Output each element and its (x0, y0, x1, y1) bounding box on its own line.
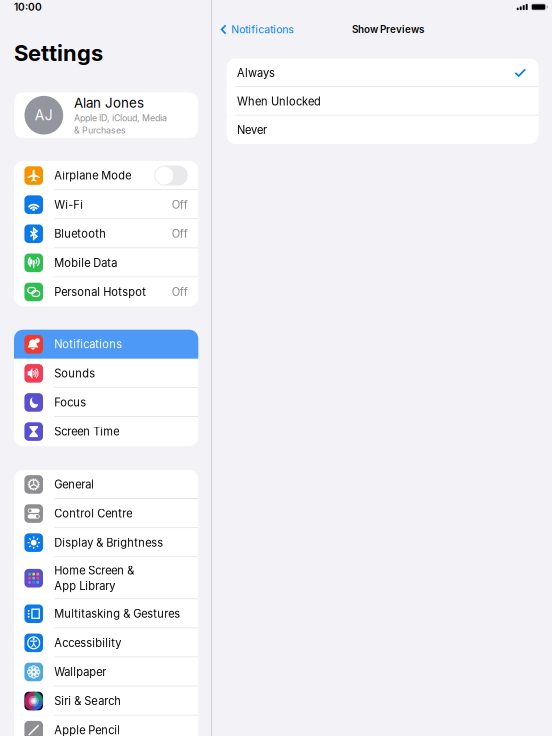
button[interactable]: Bluetooth (14, 219, 198, 248)
button[interactable]: Focus (14, 388, 198, 417)
button[interactable]: Accessibility (14, 628, 198, 657)
button[interactable]: Sounds (14, 359, 198, 388)
staticText: Off (172, 227, 188, 240)
button[interactable]: Notifications (212, 17, 301, 42)
staticText: Always (237, 66, 275, 80)
staticText: Personal Hotspot (54, 285, 146, 299)
staticText: Accessibility (54, 636, 121, 650)
staticText: Multitasking & Gestures (54, 607, 180, 620)
staticText: & Purchases (74, 125, 126, 135)
button[interactable]: Never (227, 116, 538, 144)
staticText: Notifications (54, 338, 122, 351)
staticText: Mobile Data (54, 256, 117, 270)
button[interactable]: AJ (14, 92, 198, 138)
button[interactable]: Mobile Data (14, 248, 198, 277)
staticText: Siri & Search (54, 694, 121, 708)
button[interactable]: Control Centre (14, 499, 198, 528)
staticText: Home Screen & (54, 564, 134, 577)
button[interactable]: Wi-Fi (14, 190, 198, 219)
staticText: Wi-Fi (54, 198, 83, 211)
button[interactable]: Apple Pencil (14, 716, 198, 736)
button[interactable]: Screen Time (14, 417, 198, 446)
staticText: Display & Brightness (54, 536, 163, 549)
staticText: Off (172, 285, 188, 299)
staticText: Off (172, 198, 188, 211)
button[interactable]: Personal Hotspot (14, 277, 198, 306)
button[interactable]: General (14, 470, 198, 499)
staticText: Bluetooth (54, 227, 106, 240)
staticText: Screen Time (54, 425, 119, 438)
staticText: Apple Pencil (54, 723, 120, 736)
button[interactable]: Wallpaper (14, 657, 198, 686)
staticText: Notifications (231, 23, 293, 36)
staticText: Settings (14, 40, 103, 66)
staticText: Apple ID, iCloud, Media (74, 113, 167, 123)
staticText: AJ (35, 107, 53, 124)
staticText: Airplane Mode (54, 169, 131, 182)
staticText: App Library (54, 579, 115, 593)
button[interactable]: Home Screen & (14, 557, 198, 599)
button[interactable]: Airplane Mode (14, 161, 198, 190)
button[interactable]: Always (227, 59, 538, 87)
staticText: Never (237, 123, 267, 137)
button[interactable]: When Unlocked (227, 87, 538, 116)
staticText: General (54, 478, 94, 491)
staticText: Focus (54, 396, 86, 409)
staticText: When Unlocked (237, 95, 321, 108)
button[interactable]: Notifications (14, 330, 198, 359)
button[interactable]: Siri & Search (14, 686, 198, 716)
staticText: Show Previews (352, 23, 424, 35)
staticText: 10:00 (14, 1, 42, 13)
staticText: Wallpaper (54, 665, 106, 679)
staticText: Sounds (54, 367, 95, 380)
staticText: Alan Jones (74, 95, 144, 111)
staticText: Control Centre (54, 507, 132, 520)
button[interactable]: Multitasking & Gestures (14, 599, 198, 628)
button[interactable]: Display & Brightness (14, 528, 198, 557)
